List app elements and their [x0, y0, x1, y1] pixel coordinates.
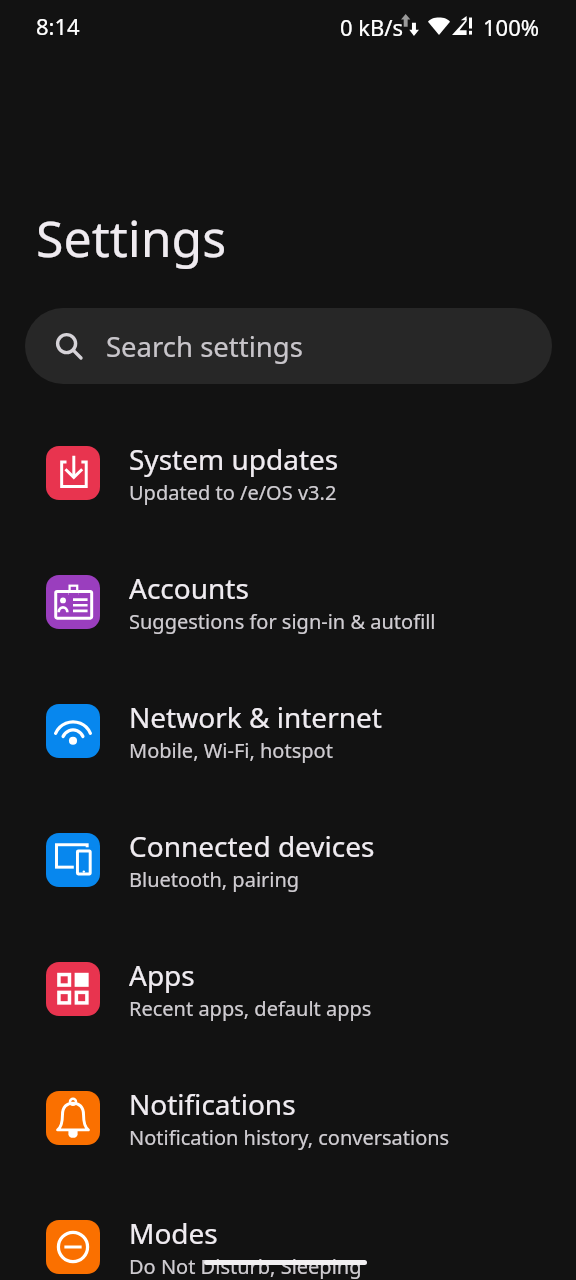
- staticText: Accounts: [129, 569, 249, 607]
- staticText: Notification history, conversations: [129, 1124, 450, 1151]
- staticText: Suggestions for sign-in & autofill: [129, 608, 436, 635]
- staticText: Do Not Disturb, Sleeping: [129, 1253, 362, 1280]
- button[interactable]: Network & internet: [0, 665, 576, 794]
- staticText: Connected devices: [129, 827, 375, 865]
- staticText: 0 kB/s: [340, 12, 404, 42]
- staticText: Modes: [129, 1214, 218, 1252]
- staticText: 8:14: [36, 11, 80, 41]
- staticText: Apps: [129, 956, 195, 994]
- staticText: Updated to /e/OS v3.2: [129, 479, 337, 506]
- staticText: Settings: [36, 204, 227, 272]
- staticText: Notifications: [129, 1085, 296, 1123]
- button[interactable]: Apps: [0, 923, 576, 1052]
- staticText: 100%: [483, 12, 540, 42]
- staticText: Network & internet: [129, 698, 382, 736]
- staticText: Recent apps, default apps: [129, 995, 372, 1022]
- button[interactable]: Accounts: [0, 536, 576, 665]
- button[interactable]: Search settings: [25, 308, 552, 384]
- staticText: Bluetooth, pairing: [129, 866, 300, 893]
- button[interactable]: Modes: [0, 1181, 576, 1280]
- button[interactable]: Connected devices: [0, 794, 576, 923]
- staticText: Mobile, Wi-Fi, hotspot: [129, 737, 333, 764]
- staticText: System updates: [129, 440, 339, 478]
- button[interactable]: Notifications: [0, 1052, 576, 1181]
- button[interactable]: System updates: [0, 407, 576, 536]
- staticText: Search settings: [106, 328, 303, 365]
